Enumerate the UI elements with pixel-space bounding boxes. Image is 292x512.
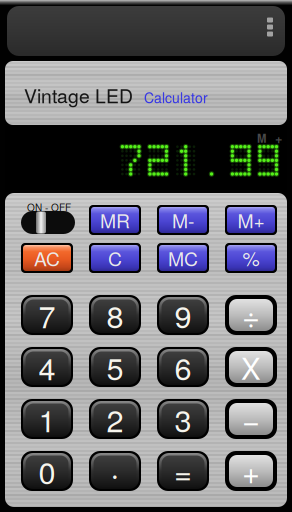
staticText: C (108, 244, 122, 272)
staticText: X (241, 346, 261, 388)
staticText: 6 (174, 345, 191, 389)
staticText: 7 (38, 293, 55, 337)
staticText: M+ (237, 206, 264, 234)
staticText: + (275, 129, 282, 147)
button[interactable]: Power (21, 211, 75, 234)
staticText: ON - OFF (27, 200, 71, 214)
button[interactable]: M+ (225, 205, 277, 235)
button[interactable]: = (157, 451, 209, 491)
button[interactable]: 2 (89, 399, 141, 439)
staticText: M (257, 130, 266, 146)
button[interactable]: Menu (261, 14, 279, 40)
staticText: 1 (38, 397, 55, 441)
staticText: 3 (174, 397, 191, 441)
button[interactable]: % (225, 243, 277, 273)
button[interactable]: MR (89, 205, 141, 235)
staticText: + (242, 449, 260, 493)
button[interactable]: 8 (89, 295, 141, 335)
button[interactable]: 0 (21, 451, 73, 491)
staticText: 5 (106, 345, 123, 389)
staticText: 4 (38, 345, 55, 389)
button[interactable]: 1 (21, 399, 73, 439)
staticText: ÷ (242, 293, 260, 337)
button[interactable]: − (225, 399, 277, 439)
staticText: M- (172, 206, 194, 234)
button[interactable]: · (89, 451, 141, 491)
button[interactable]: AC (21, 243, 73, 273)
staticText: 9 (174, 293, 191, 337)
button[interactable]: 6 (157, 347, 209, 387)
staticText: 8 (106, 293, 123, 337)
staticText: 0 (38, 449, 55, 493)
button[interactable]: C (89, 243, 141, 273)
button[interactable]: 7 (21, 295, 73, 335)
staticText: MC (168, 244, 198, 272)
staticText: % (242, 244, 259, 272)
button[interactable]: 9 (157, 295, 209, 335)
staticText: · (110, 446, 120, 496)
staticText: Calculator (144, 87, 208, 107)
button[interactable]: 5 (89, 347, 141, 387)
button[interactable]: X (225, 347, 277, 387)
staticText: Vintage LED (24, 81, 133, 109)
button[interactable]: 3 (157, 399, 209, 439)
button[interactable]: 4 (21, 347, 73, 387)
staticText: − (242, 397, 260, 441)
staticText: MR (100, 206, 130, 234)
button[interactable]: ÷ (225, 295, 277, 335)
button[interactable]: + (225, 451, 277, 491)
staticText: = (174, 449, 192, 493)
staticText: 2 (106, 397, 123, 441)
staticText: AC (34, 244, 60, 272)
button[interactable]: MC (157, 243, 209, 273)
button[interactable]: M- (157, 205, 209, 235)
